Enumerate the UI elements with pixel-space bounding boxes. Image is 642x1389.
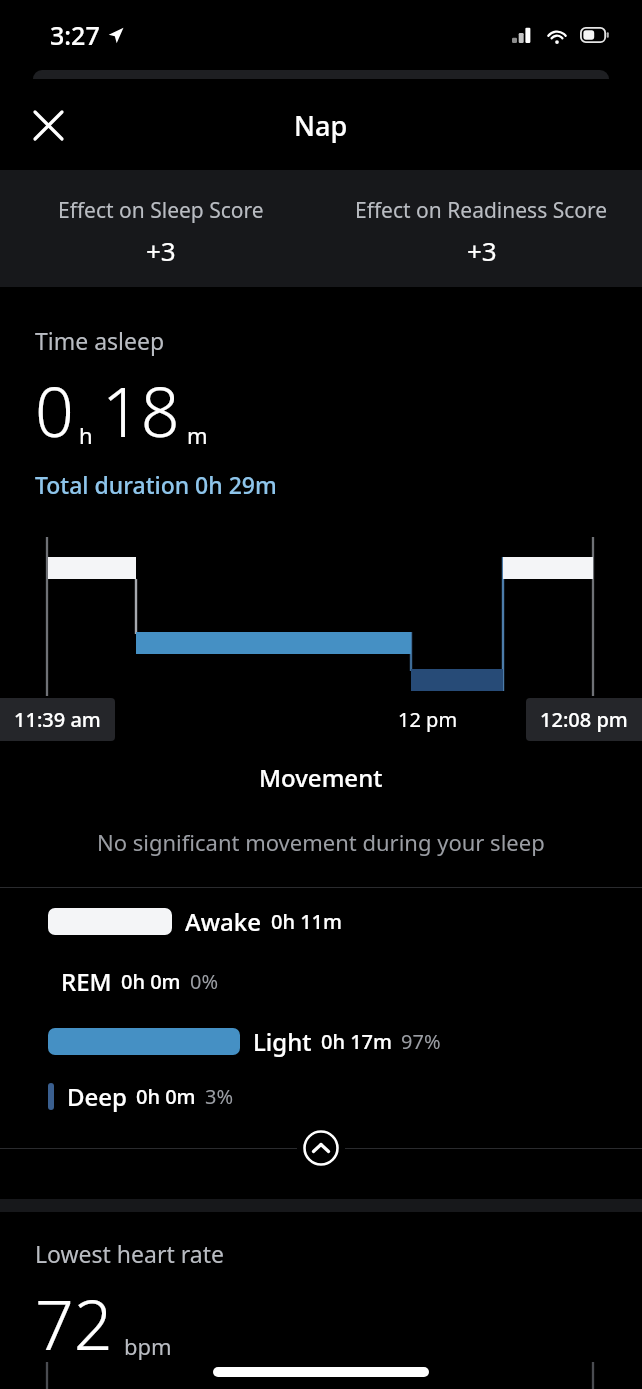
staticText: Deep xyxy=(67,1080,127,1113)
staticText: 0h 0m xyxy=(136,1083,196,1110)
button[interactable]: Collapse xyxy=(297,1124,345,1172)
staticText: Effect on Readiness Score xyxy=(355,196,608,225)
staticText: 0 xyxy=(35,364,74,457)
button[interactable]: Light xyxy=(48,1025,642,1058)
staticText: +3 xyxy=(146,233,176,268)
staticText: 3% xyxy=(205,1083,234,1110)
button[interactable]: Awake xyxy=(48,905,642,938)
staticText: 0h 0m xyxy=(121,968,181,995)
staticText: Awake xyxy=(185,905,262,938)
staticText: 97% xyxy=(401,1028,441,1055)
staticText: Average 74 bpm xyxy=(35,1382,214,1389)
staticText: +3 xyxy=(467,233,497,268)
staticText: 12 pm xyxy=(398,706,458,733)
button[interactable]: Average 74 bpm xyxy=(35,1382,214,1389)
staticText: bpm xyxy=(124,1331,172,1361)
staticText: Movement xyxy=(259,761,383,794)
button[interactable]: Total duration 0h 29m xyxy=(35,469,277,500)
staticText: 12:08 pm xyxy=(540,706,628,733)
button[interactable]: Deep xyxy=(48,1080,642,1113)
staticText: 11:39 am xyxy=(14,706,101,733)
button[interactable]: REM xyxy=(48,965,642,998)
button[interactable]: Effect on Sleep Score xyxy=(0,170,321,287)
staticText: h xyxy=(79,420,93,450)
staticText: 18 xyxy=(102,364,180,457)
staticText: Nap xyxy=(294,107,348,144)
staticText: No significant movement during your slee… xyxy=(97,827,545,857)
button[interactable]: Effect on Readiness Score xyxy=(321,170,642,287)
staticText: Lowest heart rate xyxy=(35,1238,224,1269)
staticText: Light xyxy=(253,1025,312,1058)
staticText: 3:27 xyxy=(50,18,100,52)
staticText: Total duration 0h 29m xyxy=(35,469,277,500)
staticText: Effect on Sleep Score xyxy=(58,196,264,225)
staticText: REM xyxy=(61,965,112,998)
staticText: 72 xyxy=(35,1277,113,1370)
button[interactable]: Close xyxy=(23,100,73,150)
staticText: m xyxy=(187,420,208,450)
button[interactable]: Nap xyxy=(0,80,642,170)
staticText: 0h 17m xyxy=(321,1028,392,1055)
staticText: 0% xyxy=(190,968,219,995)
staticText: 0h 11m xyxy=(271,908,342,935)
staticText: Time asleep xyxy=(35,325,165,356)
